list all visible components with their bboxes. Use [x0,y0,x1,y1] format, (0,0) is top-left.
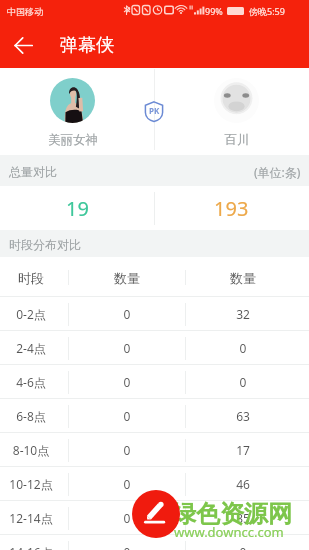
staticText: 0 [97,374,157,390]
staticText: PK [149,105,160,116]
button[interactable]: 14-16点 [0,535,309,550]
staticText: 0 [213,544,273,550]
staticText: 19 [66,195,89,222]
staticText: 8-10点 [1,442,61,458]
staticText: 中国移动 [7,6,43,17]
staticText: 绿色资源网 [172,499,292,529]
staticText: 总量对比 [9,164,57,179]
button[interactable]: Back [0,22,46,68]
button[interactable]: Edit [132,490,180,538]
button[interactable]: 10-12点 [0,467,309,501]
button[interactable]: 12-14点 [0,501,309,535]
staticText: 10-12点 [1,476,61,492]
staticText: 数量 [213,270,273,286]
staticText: www.downcc.com [174,523,284,541]
staticText: 193 [214,195,249,222]
staticText: 63 [213,408,273,424]
staticText: 时段 [1,270,61,286]
staticText: 32 [213,306,273,322]
button[interactable]: 8-10点 [0,433,309,467]
staticText: 46 [213,476,273,492]
staticText: 0 [97,476,157,492]
staticText: 0 [97,408,157,424]
staticText: 百川 [211,132,263,148]
staticText: (单位:条) [254,164,301,180]
staticText: 0 [97,510,157,526]
staticText: 0 [213,374,273,390]
staticText: 0 [97,544,157,550]
staticText: 99% [205,5,223,17]
staticText: 6-8点 [1,408,61,424]
button[interactable]: 6-8点 [0,399,309,433]
staticText: 数量 [97,270,157,286]
staticText: 17 [213,442,273,458]
button[interactable]: 2-4点 [0,331,309,365]
staticText: 0 [97,306,157,322]
staticText: 美丽女神 [47,132,99,148]
button[interactable]: 0-2点 [0,297,309,331]
staticText: 35 [213,510,273,526]
staticText: 0-2点 [1,306,61,322]
staticText: 傍晚5:59 [249,5,285,17]
staticText: 4-6点 [1,374,61,390]
staticText: 0 [97,442,157,458]
staticText: 12-14点 [1,510,61,526]
staticText: 14-16点 [1,544,61,550]
staticText: 时段分布对比 [9,237,81,252]
staticText: 2-4点 [1,340,61,356]
button[interactable]: 4-6点 [0,365,309,399]
staticText: 弹幕侠 [60,34,114,57]
staticText: 0 [97,340,157,356]
staticText: 0 [213,340,273,356]
